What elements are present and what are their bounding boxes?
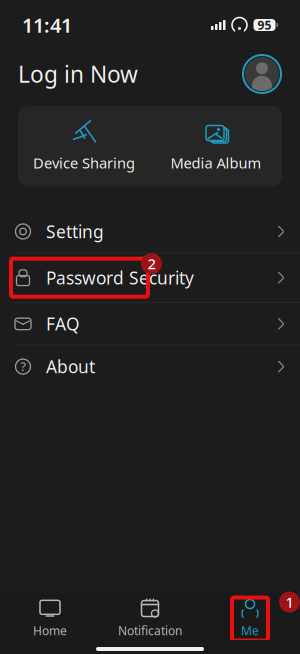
staticText: ? xyxy=(20,359,25,374)
button[interactable]: FAQ xyxy=(0,303,300,345)
staticText: 1 xyxy=(285,592,293,612)
staticText: FAQ xyxy=(46,312,80,335)
staticText: 95 xyxy=(257,17,271,33)
staticText: About xyxy=(46,355,95,378)
staticText: Log in Now xyxy=(18,59,138,89)
staticText: Password Security xyxy=(46,266,194,289)
button[interactable]: Me xyxy=(200,599,300,638)
staticText: 2 xyxy=(147,254,155,273)
staticText: Home xyxy=(33,622,67,638)
button[interactable]: Password Security xyxy=(0,257,300,299)
staticText: Media Album xyxy=(170,153,261,172)
staticText: Notification xyxy=(118,622,182,638)
button[interactable]: Notification xyxy=(100,599,200,638)
staticText: Setting xyxy=(46,220,104,243)
button[interactable]: Home xyxy=(0,599,100,638)
staticText: Me xyxy=(241,622,259,638)
button[interactable]: Setting xyxy=(0,210,300,252)
button[interactable]: Media Album xyxy=(150,106,282,186)
button[interactable]: Device Sharing xyxy=(18,106,150,186)
button[interactable]: Profile xyxy=(242,54,282,94)
button[interactable]: ? xyxy=(0,346,300,388)
staticText: 11:41 xyxy=(22,12,72,38)
staticText: Device Sharing xyxy=(33,153,135,172)
